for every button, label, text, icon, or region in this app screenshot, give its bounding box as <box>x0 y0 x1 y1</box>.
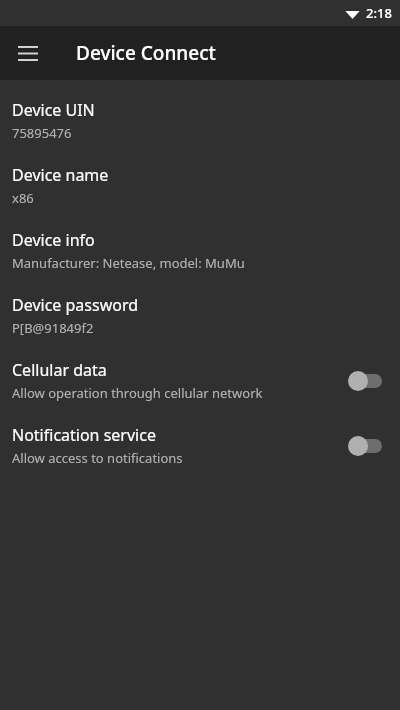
staticText: Device Connect <box>76 40 216 66</box>
button[interactable]: Device UIN <box>0 88 400 153</box>
button[interactable]: Toggle off <box>348 369 384 393</box>
staticText: Device name <box>12 164 109 186</box>
staticText: Device UIN <box>12 99 95 121</box>
button[interactable]: Device password <box>0 283 400 348</box>
button[interactable]: Open navigation menu <box>4 29 52 77</box>
staticText: Allow operation through cellular network <box>12 384 263 402</box>
button[interactable]: Device name <box>0 153 400 218</box>
button[interactable]: Device info <box>0 218 400 283</box>
button[interactable]: Notification service <box>0 413 400 478</box>
staticText: Manufacturer: Netease, model: MuMu <box>12 254 245 272</box>
staticText: 2:18 <box>366 4 392 22</box>
button[interactable]: Cellular data <box>0 348 400 413</box>
staticText: Device password <box>12 294 139 316</box>
staticText: Cellular data <box>12 359 107 381</box>
staticText: x86 <box>12 189 34 207</box>
staticText: 75895476 <box>12 124 72 142</box>
staticText: Device info <box>12 229 95 251</box>
button[interactable]: Toggle off <box>348 434 384 458</box>
staticText: Allow access to notifications <box>12 449 183 467</box>
staticText: P[B@91849f2 <box>12 319 94 337</box>
staticText: Notification service <box>12 424 156 446</box>
